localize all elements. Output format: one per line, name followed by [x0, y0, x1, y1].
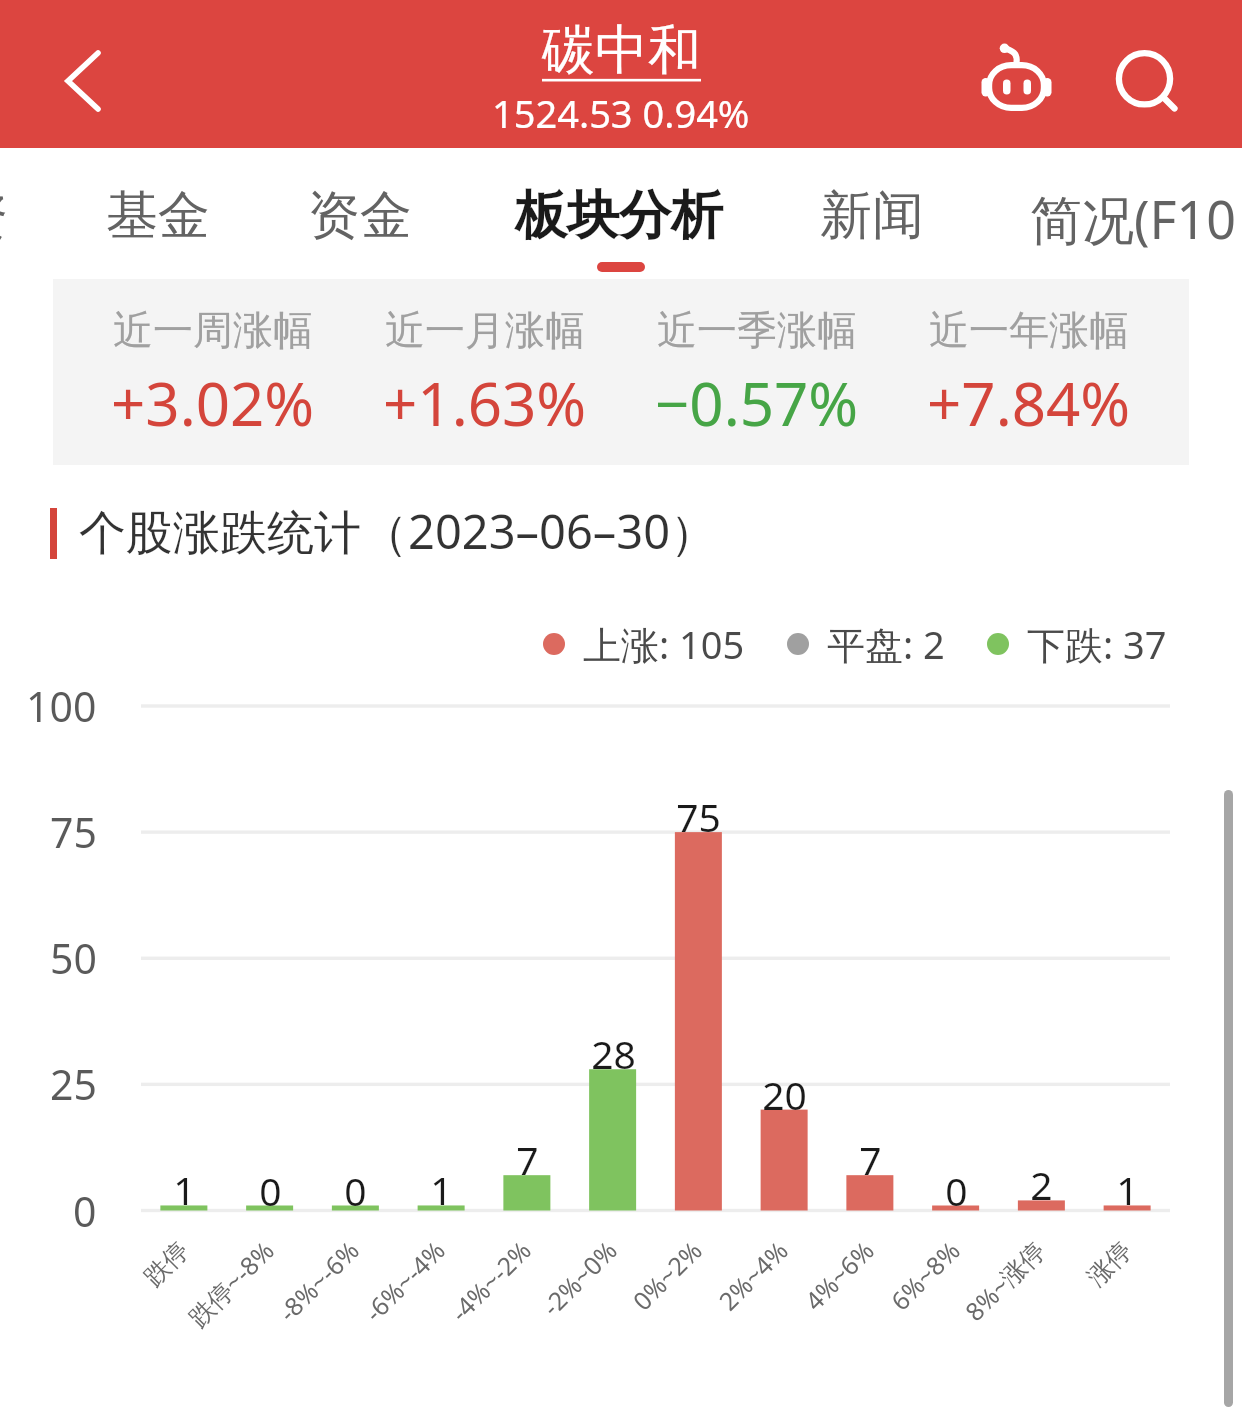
- staticText: 0: [945, 1164, 968, 1217]
- staticText: 跌停: [138, 1235, 195, 1292]
- button[interactable]: 资金: [260, 148, 490, 279]
- button[interactable]: 近一周涨幅: [77, 279, 349, 465]
- staticText: 基金: [106, 183, 210, 249]
- staticText: +7.84%: [927, 362, 1131, 444]
- button[interactable]: 资: [0, 148, 60, 279]
- button[interactable]: 简况(F10: [1000, 148, 1242, 279]
- staticText: 近一周涨幅: [113, 305, 313, 355]
- staticText: 8%~涨停: [957, 1233, 1052, 1328]
- staticText: 7: [859, 1133, 882, 1186]
- staticText: 2%~4%: [711, 1233, 795, 1317]
- staticText: 近一月涨幅: [385, 305, 585, 355]
- staticText: 0: [259, 1164, 282, 1217]
- staticText: 2: [1030, 1158, 1053, 1211]
- staticText: +3.02%: [111, 362, 315, 444]
- staticText: 1524.53 0.94%: [492, 87, 750, 139]
- staticText: 平盘: 2: [827, 618, 945, 670]
- staticText: -8%~-6%: [270, 1233, 366, 1328]
- staticText: 1: [1116, 1163, 1139, 1216]
- staticText: 75: [676, 790, 721, 843]
- staticText: 个股涨跌统计（2023–06–30）: [79, 499, 718, 563]
- staticText: 4%~6%: [797, 1233, 881, 1317]
- button[interactable]: 基金: [60, 148, 260, 279]
- staticText: 28: [591, 1027, 636, 1080]
- staticText: 25: [50, 1056, 97, 1112]
- staticText: 1: [173, 1163, 196, 1216]
- staticText: 板块分析: [515, 183, 723, 249]
- staticText: -2%~0%: [534, 1233, 624, 1323]
- button[interactable]: Search: [1085, 0, 1242, 148]
- button[interactable]: 近一季涨幅: [621, 279, 893, 465]
- staticText: 碳中和: [542, 17, 701, 84]
- staticText: 100: [26, 678, 97, 734]
- staticText: 简况(F10: [1030, 183, 1237, 254]
- staticText: 涨停: [1081, 1235, 1138, 1292]
- staticText: 50: [50, 930, 97, 986]
- staticText: 资: [0, 183, 8, 249]
- staticText: 新闻: [820, 183, 924, 249]
- staticText: 0%~2%: [625, 1233, 709, 1317]
- staticText: −0.57%: [655, 362, 859, 444]
- staticText: 上涨: 105: [583, 618, 745, 670]
- button[interactable]: 板块分析: [490, 148, 748, 279]
- staticText: 20: [762, 1068, 807, 1121]
- staticText: 资金: [308, 183, 412, 249]
- staticText: -6%~-4%: [356, 1233, 452, 1328]
- staticText: 跌停~-8%: [181, 1233, 281, 1333]
- staticText: 75: [50, 804, 97, 860]
- staticText: 0: [344, 1164, 367, 1217]
- staticText: 近一年涨幅: [929, 305, 1129, 355]
- staticText: 下跌: 37: [1027, 618, 1167, 670]
- staticText: 0: [73, 1183, 97, 1239]
- button[interactable]: AI assistant: [950, 0, 1085, 148]
- staticText: +1.63%: [383, 362, 587, 444]
- button[interactable]: 近一年涨幅: [893, 279, 1165, 465]
- button[interactable]: 近一月涨幅: [349, 279, 621, 465]
- button[interactable]: Back: [0, 0, 165, 148]
- staticText: -4%~-2%: [442, 1233, 538, 1328]
- staticText: 6%~8%: [883, 1233, 967, 1317]
- button[interactable]: 新闻: [748, 148, 1000, 279]
- staticText: 近一季涨幅: [657, 305, 857, 355]
- staticText: 1: [430, 1163, 453, 1216]
- staticText: 7: [516, 1133, 539, 1186]
